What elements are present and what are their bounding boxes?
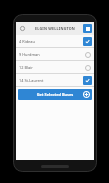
button[interactable]: 12 Blair xyxy=(16,61,94,73)
button[interactable]: Get Selected Buses xyxy=(18,89,92,100)
button[interactable]: 14 St-Laurent xyxy=(16,74,94,86)
staticText: Get Selected Buses xyxy=(18,92,92,97)
button[interactable]: 4 Rideau xyxy=(16,35,94,47)
staticText: ELGIN WELLINGTON xyxy=(27,26,83,31)
staticText: 14 St-Laurent xyxy=(19,78,83,83)
staticText: 9 Hurdman xyxy=(19,52,83,57)
button[interactable]: Show map xyxy=(83,24,92,33)
button[interactable]: 9 Hurdman xyxy=(16,48,94,60)
button[interactable]: Navigate up xyxy=(18,24,27,33)
staticText: 4 Rideau xyxy=(19,39,83,44)
staticText: 12 Blair xyxy=(19,65,83,70)
